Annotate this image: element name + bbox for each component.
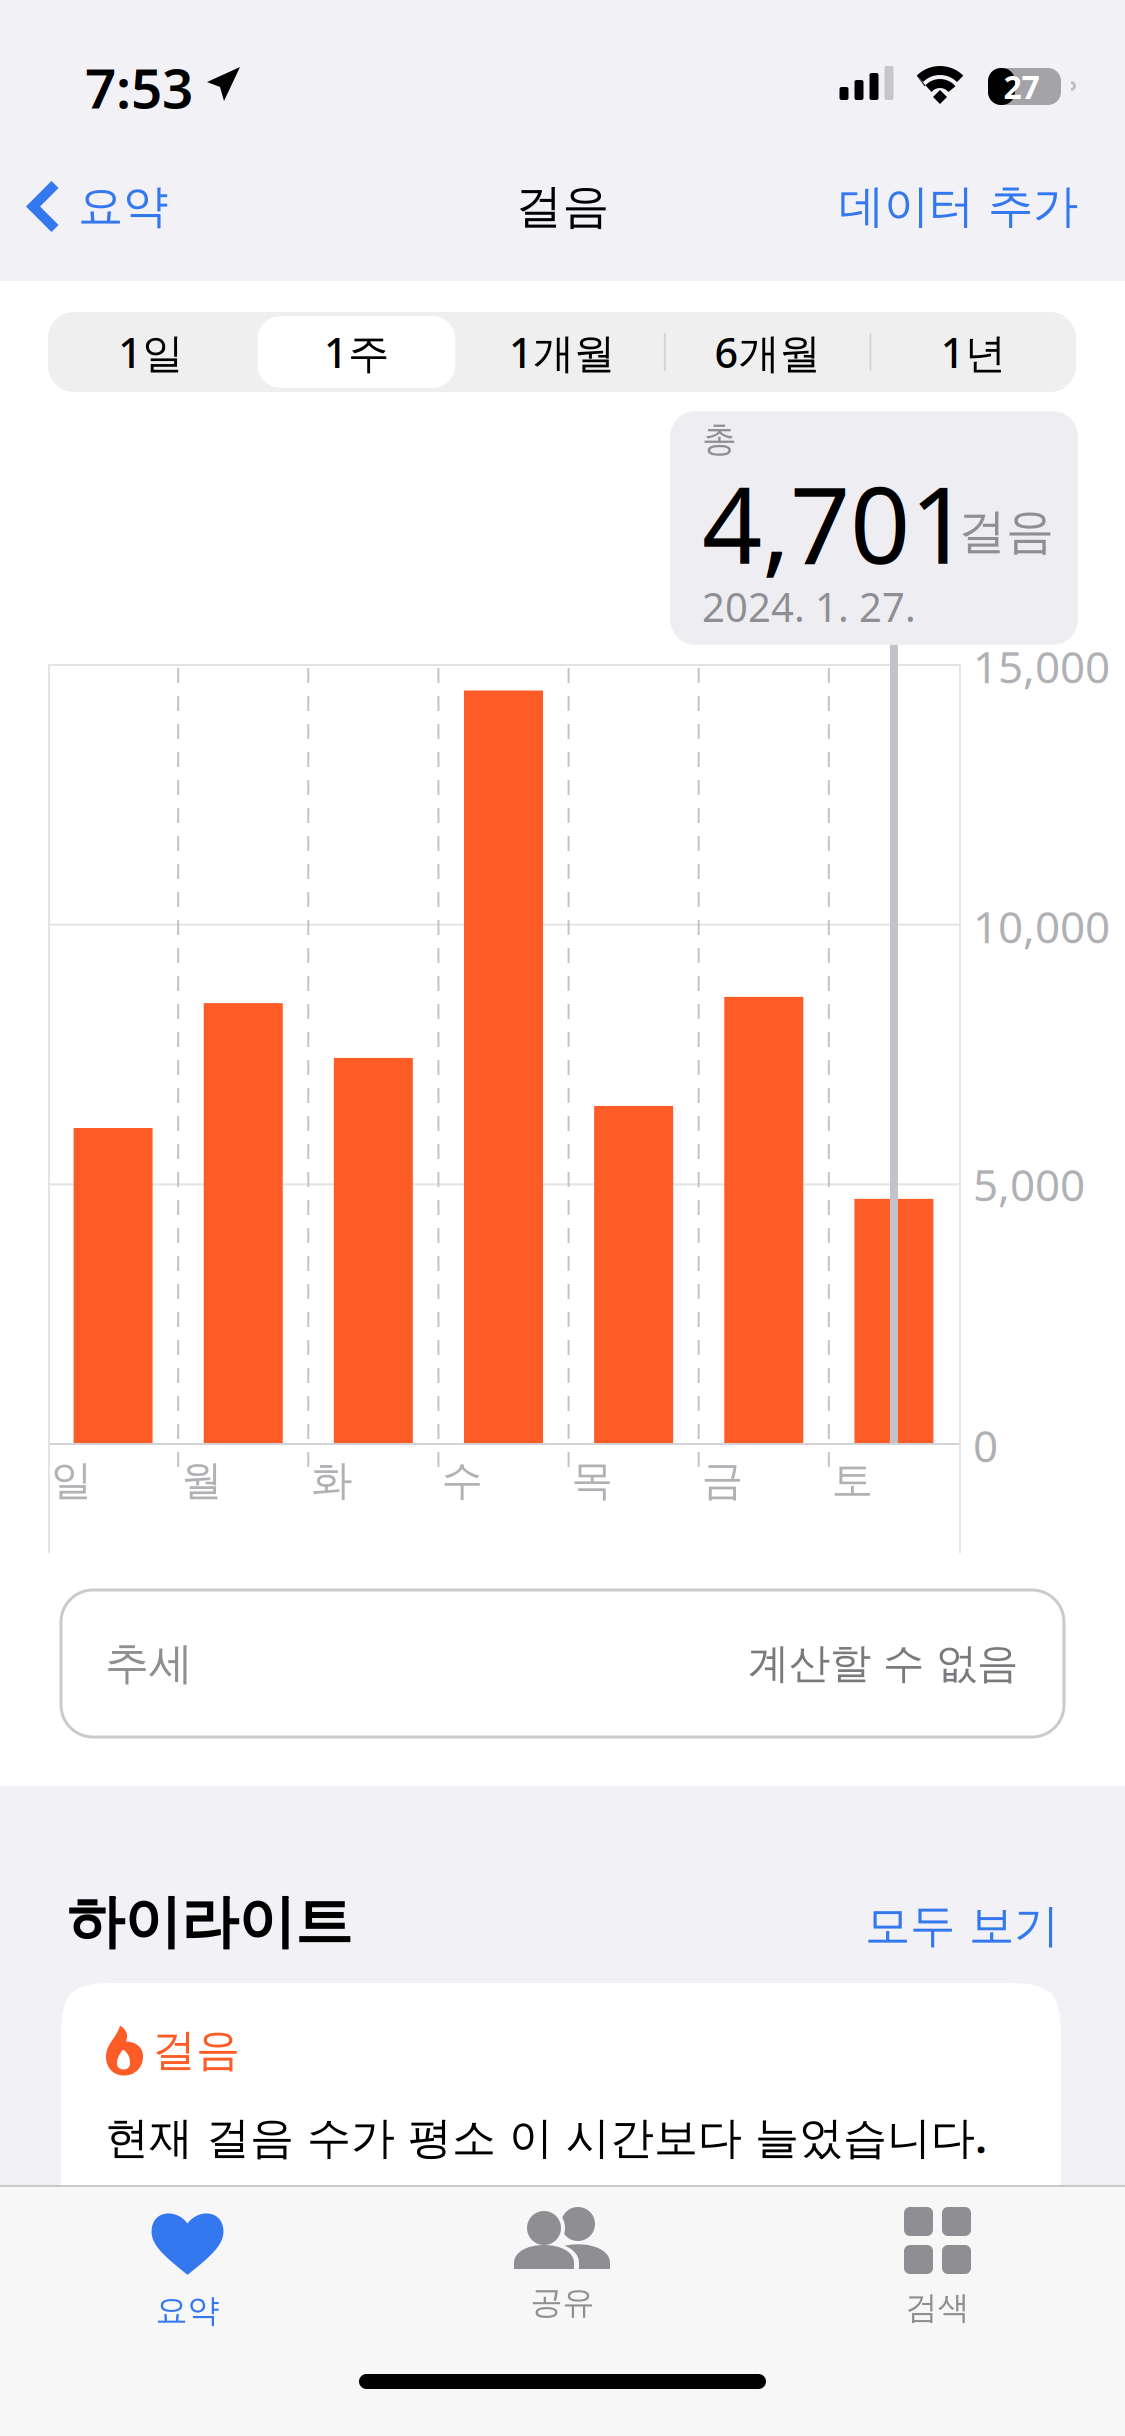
- staticText: 검색: [905, 2288, 969, 2327]
- staticText: 15,000: [973, 637, 1110, 695]
- staticText: 계산할 수 없음: [748, 1638, 1018, 1689]
- button[interactable]: 검색: [750, 2185, 1125, 2375]
- button[interactable]: 추세: [61, 1590, 1064, 1737]
- staticText: 화: [311, 1455, 352, 1506]
- staticText: 추세: [105, 1636, 193, 1690]
- staticText: 공유: [530, 2283, 594, 2322]
- staticText: 월: [181, 1455, 222, 1506]
- staticText: 현재 걸음 수가 평소 이 시간보다 늘었습니다.: [105, 2107, 987, 2165]
- button[interactable]: 1개월: [459, 312, 665, 392]
- staticText: 1주: [324, 325, 389, 379]
- staticText: 5,000: [973, 1155, 1085, 1213]
- staticText: 토: [832, 1455, 873, 1506]
- button[interactable]: 요약: [0, 2185, 375, 2375]
- staticText: 모두 보기: [865, 1898, 1059, 1954]
- button[interactable]: 1주: [254, 312, 459, 392]
- staticText: 1일: [118, 325, 183, 379]
- button[interactable]: 모두 보기: [845, 1886, 1125, 1966]
- staticText: 1년: [941, 325, 1006, 379]
- staticText: 걸음: [958, 502, 1054, 561]
- staticText: 걸음: [515, 178, 609, 235]
- staticText: 6개월: [715, 325, 821, 379]
- staticText: 4,701: [702, 453, 970, 593]
- button[interactable]: 1일: [48, 312, 254, 392]
- staticText: 일: [51, 1455, 92, 1506]
- button[interactable]: 1년: [870, 312, 1076, 392]
- staticText: 목: [572, 1455, 613, 1506]
- button[interactable]: 6개월: [665, 312, 870, 392]
- staticText: 요약: [78, 179, 168, 234]
- button[interactable]: 데이터 추가: [815, 132, 1125, 281]
- button[interactable]: 공유: [375, 2185, 750, 2375]
- staticText: 2024. 1. 27.: [702, 580, 916, 633]
- staticText: 걸음: [152, 2023, 240, 2077]
- button[interactable]: 걸음: [61, 1983, 1061, 2283]
- staticText: 1개월: [509, 325, 615, 379]
- staticText: 0: [973, 1416, 998, 1474]
- staticText: 요약: [155, 2291, 219, 2330]
- staticText: 수: [441, 1455, 482, 1506]
- staticText: 하이라이트: [67, 1887, 352, 1957]
- staticText: 7:53: [85, 51, 193, 124]
- staticText: 10,000: [973, 897, 1110, 955]
- staticText: 27: [1003, 65, 1039, 108]
- button[interactable]: 요약: [0, 132, 192, 281]
- staticText: 총: [702, 418, 737, 461]
- staticText: 데이터 추가: [839, 179, 1078, 234]
- staticText: 금: [702, 1455, 743, 1506]
